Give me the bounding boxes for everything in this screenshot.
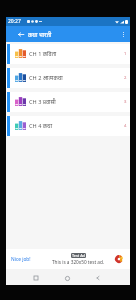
staticText: CH 2 आत्मकथा bbox=[29, 74, 63, 82]
button[interactable]: CH 4 कथा bbox=[6, 116, 130, 136]
button[interactable]: Back bbox=[92, 272, 104, 284]
staticText: CH 1 कविता bbox=[29, 50, 57, 58]
button[interactable]: More options bbox=[117, 28, 130, 41]
staticText: This is a 320x50 test ad. bbox=[52, 259, 105, 265]
staticText: 4 bbox=[124, 123, 127, 129]
staticText: कथा भारती bbox=[28, 31, 52, 38]
staticText: 3 bbox=[124, 99, 127, 105]
button[interactable]: CH 2 आत्मकथा bbox=[6, 68, 130, 88]
staticText: 2 bbox=[124, 75, 127, 81]
button[interactable]: Navigate up bbox=[13, 26, 29, 42]
button[interactable]: Home bbox=[61, 272, 73, 284]
staticText: 1 bbox=[124, 51, 127, 57]
button[interactable]: CH 3 प्रवासी bbox=[6, 92, 130, 112]
staticText: Test Ad bbox=[72, 253, 85, 258]
staticText: 20:27 bbox=[8, 18, 21, 25]
staticText: CH 3 प्रवासी bbox=[29, 98, 56, 106]
staticText: Nice job! bbox=[11, 256, 31, 263]
staticText: CH 4 कथा bbox=[29, 122, 53, 130]
button[interactable]: Recent apps bbox=[30, 272, 42, 284]
button[interactable]: CH 1 कविता bbox=[6, 44, 130, 64]
